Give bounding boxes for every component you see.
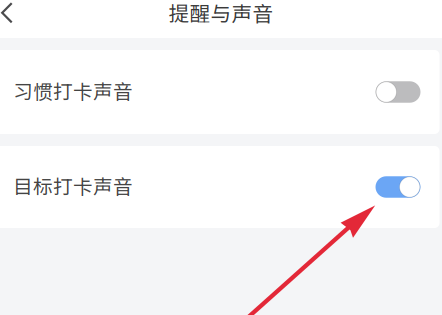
staticText: 提醒与声音 xyxy=(168,0,273,27)
staticText: 习惯打卡声音 xyxy=(13,76,133,105)
button[interactable]: 习惯打卡声音 xyxy=(0,50,442,134)
button[interactable]: 目标打卡声音 xyxy=(0,146,442,228)
button[interactable]: Back xyxy=(0,2,34,36)
staticText: 目标打卡声音 xyxy=(13,171,133,200)
